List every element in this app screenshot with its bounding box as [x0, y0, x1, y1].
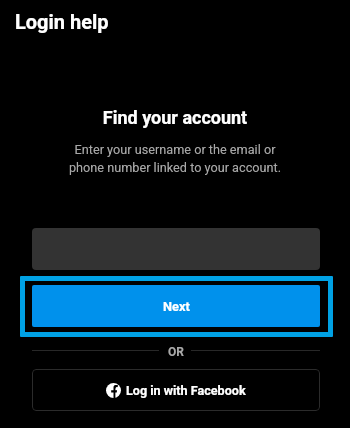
button[interactable]: Next — [32, 285, 320, 327]
staticText: Enter your username or the email or phon… — [30, 142, 320, 176]
button[interactable]: Log in with Facebook — [32, 369, 320, 411]
staticText: Login help — [15, 10, 109, 33]
staticText: OR — [168, 345, 184, 359]
staticText: Find your account — [0, 107, 350, 128]
staticText: Next — [163, 299, 190, 314]
staticText: Log in with Facebook — [126, 383, 246, 398]
